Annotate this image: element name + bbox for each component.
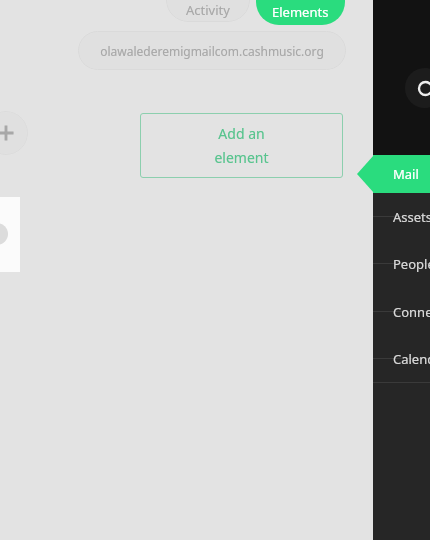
button[interactable]: Activity	[166, 0, 250, 22]
button[interactable]: Mail	[373, 155, 430, 193]
staticText: Add an	[218, 124, 265, 143]
button[interactable]: olawalederemigmailcom.cashmusic.org	[78, 31, 346, 70]
staticText: element	[214, 148, 269, 167]
staticText: People	[393, 255, 430, 273]
staticText: olawalederemigmailcom.cashmusic.org	[100, 43, 324, 59]
staticText: Calendar	[393, 350, 430, 368]
button[interactable]: Connect	[373, 288, 430, 335]
button[interactable]: Calendar	[373, 335, 430, 382]
button[interactable]: People	[373, 240, 430, 287]
button[interactable]: Profile	[405, 68, 430, 108]
staticText: Activity	[186, 1, 230, 19]
button[interactable]: Add	[0, 111, 28, 155]
staticText: Connect	[393, 303, 430, 321]
button[interactable]: Elements	[256, 0, 345, 25]
staticText: Assets	[393, 208, 430, 226]
button[interactable]: Element card	[0, 197, 20, 272]
button[interactable]: Add an	[140, 113, 343, 178]
staticText: Mail	[393, 165, 419, 183]
button[interactable]: Assets	[373, 193, 430, 240]
staticText: Elements	[272, 3, 329, 21]
